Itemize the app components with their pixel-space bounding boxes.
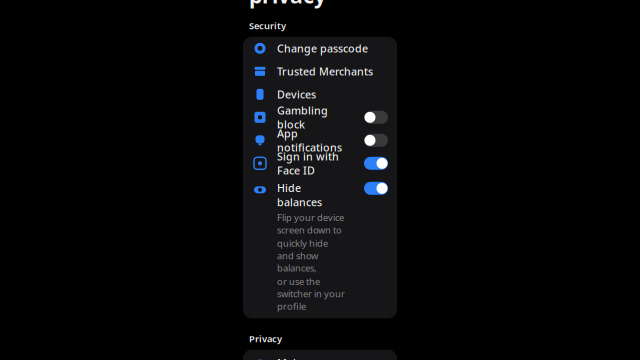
staticText: Security & privacy bbox=[249, 0, 358, 9]
button[interactable]: App notifications bbox=[243, 129, 397, 152]
staticText: quickly hide and show balances, bbox=[277, 237, 328, 274]
staticText: Change passcode bbox=[277, 41, 368, 55]
staticText: App notifications bbox=[277, 126, 342, 154]
staticText: Devices bbox=[277, 87, 316, 101]
button[interactable]: Sign in with Face ID bbox=[243, 152, 397, 175]
staticText: Hide balances bbox=[277, 181, 322, 209]
button[interactable]: Make me discoverable bbox=[243, 350, 397, 360]
staticText: Trusted Merchants bbox=[277, 64, 373, 78]
button[interactable]: Hide balances bbox=[243, 175, 397, 318]
staticText: Sign in with Face ID bbox=[277, 149, 339, 177]
staticText: or use the switcher in your profile bbox=[277, 275, 345, 312]
staticText: Flip your device screen down to bbox=[277, 211, 344, 236]
staticText: Gambling block bbox=[277, 103, 328, 131]
staticText: Security bbox=[249, 19, 286, 32]
button[interactable]: Trusted Merchants bbox=[243, 60, 397, 83]
button[interactable]: Gambling block bbox=[243, 106, 397, 129]
button[interactable]: Change passcode bbox=[243, 37, 397, 60]
staticText: Privacy bbox=[249, 332, 282, 345]
button[interactable]: Devices bbox=[243, 83, 397, 106]
staticText: Make me discoverable bbox=[277, 356, 341, 360]
